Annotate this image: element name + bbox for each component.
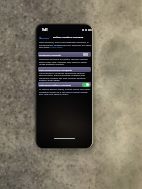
staticText: More capacity, info of rechargeable batt… [39,41,90,44]
button[interactable]: Back to Battery [39,36,50,39]
staticText: Peak Performance Capability [39,68,73,71]
staticText: usage between charges. [39,63,65,66]
staticText: charging routine so it can wait to finis… [39,91,88,94]
staticText: 80% until you need to use it. [39,93,69,96]
button[interactable]: Optimized Battery Charging [38,82,91,87]
button[interactable]: Peak Performance Capability [38,67,91,72]
staticText: this stage. Learn more [39,46,63,49]
staticText: To reduce battery aging, iPhone learns y… [39,88,91,91]
staticText: Optimized Battery Charging [39,83,71,86]
staticText: Maximum Capacity [39,53,61,56]
staticText: hardware systems will help counter perfo… [39,77,86,80]
staticText: 93% [83,53,89,56]
staticText: Battery Health & Charging [53,36,84,39]
staticText: automatically compensates for batteries … [39,44,92,47]
staticText: Maximum measure of battery capacity rela… [39,58,88,61]
staticText: impacts from aging. [39,79,60,82]
staticText: Your battery is currently supporting nor… [39,72,85,75]
staticText: performance. Built-in dynamic software a… [39,74,85,77]
staticText: when it was new. Capacity may result in … [39,61,87,64]
button[interactable]: Maximum Capacity [38,52,91,57]
staticText: 9:41 [42,28,48,32]
staticText: Battery [41,36,50,39]
